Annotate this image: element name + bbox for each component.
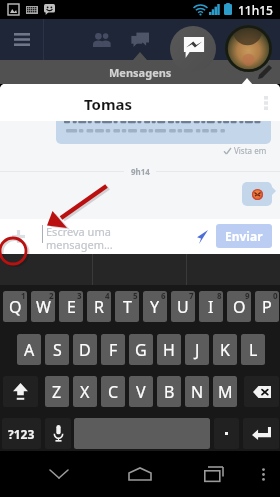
staticText: P bbox=[262, 296, 272, 318]
staticText: Q bbox=[9, 296, 22, 318]
button[interactable]: Add attachment bbox=[0, 219, 36, 254]
staticText: 9h14 bbox=[131, 166, 150, 177]
staticText: Vista em bbox=[234, 145, 267, 156]
button[interactable]: I bbox=[199, 291, 223, 322]
button[interactable]: Y bbox=[143, 291, 167, 322]
staticText: U bbox=[177, 296, 189, 318]
staticText: G bbox=[135, 339, 147, 361]
button[interactable]: Home bbox=[117, 451, 163, 497]
staticText: O bbox=[233, 296, 246, 318]
button[interactable]: O bbox=[227, 291, 251, 322]
staticText: H bbox=[163, 339, 175, 361]
staticText: L bbox=[249, 339, 258, 361]
button[interactable]: S bbox=[45, 334, 69, 365]
button[interactable]: Send sticker bbox=[188, 219, 214, 254]
staticText: 9 bbox=[245, 291, 250, 301]
staticText: Tomas bbox=[84, 94, 133, 114]
button[interactable]: E bbox=[59, 291, 83, 322]
button[interactable]: Q bbox=[3, 291, 27, 322]
staticText: 6 bbox=[161, 291, 166, 301]
button[interactable]: N bbox=[185, 376, 209, 407]
button[interactable]: Voice input bbox=[45, 418, 71, 449]
staticText: 7 bbox=[189, 291, 194, 301]
button[interactable]: More bbox=[247, 451, 280, 497]
button[interactable]: Backspace bbox=[244, 376, 279, 407]
button[interactable]: Menu bbox=[0, 19, 43, 60]
button[interactable]: Period bbox=[214, 418, 239, 449]
staticText: F bbox=[109, 339, 118, 361]
button[interactable]: L bbox=[241, 334, 265, 365]
button[interactable]: D bbox=[73, 334, 97, 365]
button[interactable]: Messenger chat head bbox=[170, 26, 216, 72]
staticText: N bbox=[191, 381, 204, 403]
button[interactable]: C bbox=[101, 376, 125, 407]
button[interactable]: M bbox=[213, 376, 237, 407]
staticText: I bbox=[208, 296, 214, 318]
staticText: 11h15 bbox=[238, 2, 273, 18]
staticText: X bbox=[80, 381, 90, 403]
button[interactable]: W bbox=[31, 291, 55, 322]
button[interactable]: Friend requests bbox=[80, 19, 123, 60]
button[interactable]: Shift bbox=[3, 376, 38, 407]
staticText: Y bbox=[150, 296, 160, 318]
button[interactable]: Enter bbox=[243, 418, 279, 449]
button[interactable]: U bbox=[171, 291, 195, 322]
staticText: 1 bbox=[21, 291, 26, 301]
staticText: ?123 bbox=[8, 426, 35, 442]
button[interactable]: K bbox=[213, 334, 237, 365]
staticText: R bbox=[94, 296, 104, 318]
button[interactable]: Messages bbox=[119, 19, 161, 60]
button[interactable]: G bbox=[129, 334, 153, 365]
staticText: 5 bbox=[133, 291, 138, 301]
staticText: J bbox=[195, 339, 200, 361]
button[interactable]: B bbox=[157, 376, 181, 407]
staticText: 8 bbox=[217, 291, 222, 301]
staticText: 4 bbox=[105, 291, 110, 301]
button[interactable]: R bbox=[87, 291, 111, 322]
staticText: Enviar bbox=[225, 228, 263, 244]
staticText: D bbox=[79, 339, 91, 361]
button[interactable]: Recent apps bbox=[191, 451, 237, 497]
button[interactable]: Z bbox=[45, 376, 69, 407]
button[interactable]: Enviar bbox=[216, 224, 272, 248]
button[interactable]: P bbox=[255, 291, 279, 322]
staticText: V bbox=[136, 381, 146, 403]
staticText: 0 bbox=[273, 291, 278, 301]
button[interactable]: J bbox=[185, 334, 209, 365]
staticText: Escreva uma mensagem… bbox=[46, 224, 113, 252]
staticText: W bbox=[36, 296, 51, 318]
staticText: C bbox=[108, 381, 119, 403]
button[interactable]: Back bbox=[36, 451, 82, 497]
staticText: A bbox=[24, 339, 35, 361]
button[interactable]: H bbox=[157, 334, 181, 365]
staticText: M bbox=[218, 381, 233, 403]
staticText: 2 bbox=[49, 291, 54, 301]
staticText: T bbox=[123, 296, 132, 318]
button[interactable] bbox=[0, 254, 92, 285]
button[interactable]: X bbox=[73, 376, 97, 407]
button[interactable]: V bbox=[129, 376, 153, 407]
staticText: K bbox=[220, 339, 230, 361]
staticText: Mensagens bbox=[109, 65, 172, 80]
staticText: S bbox=[53, 339, 62, 361]
button[interactable]: F bbox=[101, 334, 125, 365]
staticText: Z bbox=[52, 381, 62, 403]
button[interactable]: T bbox=[115, 291, 139, 322]
button[interactable]: Symbols bbox=[2, 418, 41, 449]
staticText: 3 bbox=[77, 291, 82, 301]
button[interactable]: Profile bbox=[225, 25, 272, 72]
button[interactable]: More options bbox=[252, 84, 280, 121]
button[interactable]: A bbox=[17, 334, 41, 365]
button[interactable]: New message bbox=[250, 60, 280, 84]
staticText: B bbox=[164, 381, 175, 403]
staticText: E bbox=[67, 296, 76, 318]
